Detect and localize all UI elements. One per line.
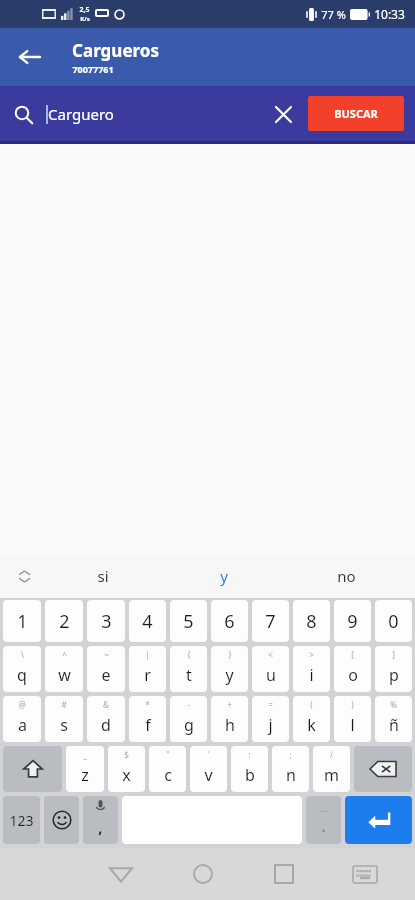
button[interactable]: y [163,554,285,598]
staticText: m [324,764,339,786]
staticText: # [61,699,67,710]
staticText: b [245,764,255,786]
button[interactable]: 6 [211,600,248,642]
button[interactable]: | [129,646,166,692]
staticText: Cargueros [72,39,159,62]
button[interactable]: Back [6,34,52,80]
button[interactable]: / [313,746,350,792]
staticText: ~ [104,649,109,660]
staticText: e [101,664,111,686]
staticText: 4 [142,609,153,634]
button[interactable]: 9 [334,600,371,642]
button[interactable]: ~ [87,646,125,692]
button[interactable]: + [211,696,248,742]
button[interactable]: 0 [375,600,412,642]
staticText: s [60,714,68,736]
button[interactable]: 5 [170,600,207,642]
button[interactable]: 123 [3,796,40,844]
button[interactable]: ] [375,646,412,692]
button[interactable]: { [170,646,207,692]
button[interactable]: : [231,746,268,792]
staticText: 0 [388,609,399,634]
button[interactable]: } [211,646,248,692]
button[interactable]: Back [80,848,162,900]
staticText: y [225,664,234,686]
staticText: \ [21,649,24,660]
button[interactable]: Expand suggestions [8,560,40,592]
staticText: ñ [389,714,399,736]
staticText: : [248,749,251,760]
staticText: t [186,664,192,686]
button[interactable]: Enter [345,796,412,844]
button[interactable]: ; [272,746,309,792]
button[interactable]: Hide keyboard [324,848,405,900]
button[interactable]: \ [3,646,41,692]
staticText: _ [83,749,87,760]
button[interactable]: & [87,696,125,742]
staticText: ) [351,699,354,710]
button[interactable]: Backspace [354,746,412,792]
button[interactable]: ^ [45,646,83,692]
staticText: j [268,714,273,736]
staticText: " [166,749,170,760]
staticText: < [268,649,273,660]
staticText: v [204,764,213,786]
button[interactable]: _ [66,746,104,792]
button[interactable]: " [149,746,186,792]
button[interactable]: Home [162,848,243,900]
button[interactable]: Emoji [44,796,79,844]
button[interactable]: $ [108,746,145,792]
button[interactable]: @ [3,696,41,742]
staticText: u [266,664,276,686]
button[interactable]: BUSCAR [308,96,404,131]
staticText: 3 [101,609,112,634]
button[interactable]: > [293,646,330,692]
staticText: p [389,664,399,686]
button[interactable]: - [170,696,207,742]
button[interactable]: * [129,696,166,742]
staticText: 7 [265,609,276,634]
button[interactable]: = [252,696,289,742]
staticText: 1 [17,609,28,634]
button[interactable]: < [252,646,289,692]
button[interactable]: Clear [263,94,303,134]
staticText: = [268,699,273,710]
staticText: 9 [347,609,358,634]
staticText: 2 [59,609,70,634]
button[interactable]: Shift [3,746,62,792]
button[interactable]: % [375,696,412,742]
staticText: l [350,714,355,736]
button[interactable]: Voice input [83,796,118,844]
staticText: h [225,714,235,736]
staticText: ^ [62,649,67,660]
button[interactable]: Recents [243,848,324,900]
staticText: d [101,714,111,736]
staticText: } [228,649,232,660]
button[interactable]: 3 [87,600,125,642]
staticText: si [97,566,109,586]
button[interactable]: # [45,696,83,742]
staticText: y [220,566,228,586]
button[interactable]: 1 [3,600,41,642]
button[interactable]: si [42,554,163,598]
staticText: x [122,764,131,786]
button[interactable]: ( [293,696,330,742]
button[interactable]: 8 [293,600,330,642]
button[interactable]: ' [190,746,227,792]
button[interactable]: no [285,554,407,598]
staticText: Carguero [48,104,114,124]
button[interactable]: Period [306,796,341,844]
button[interactable]: 2 [45,600,83,642]
staticText: BUSCAR [334,106,378,121]
button[interactable]: [ [334,646,371,692]
button[interactable]: 7 [252,600,289,642]
button[interactable]: 4 [129,600,166,642]
staticText: c [164,764,172,786]
button[interactable]: ) [334,696,371,742]
staticText: [ [351,649,354,660]
staticText: { [187,649,191,660]
staticText: z [81,764,89,786]
button[interactable]: Search [2,93,44,135]
staticText: ... [320,802,328,814]
